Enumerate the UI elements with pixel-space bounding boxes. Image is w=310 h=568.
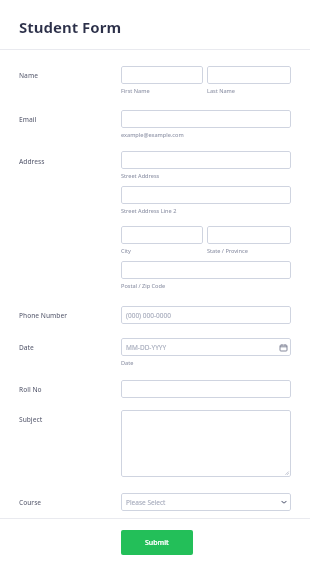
staticText: Street Address Line 2 xyxy=(121,207,177,215)
button[interactable]: City xyxy=(121,226,203,244)
button[interactable]: Email xyxy=(121,110,291,128)
staticText: Postal / Zip Code xyxy=(121,282,166,290)
staticText: Phone Number xyxy=(19,311,67,320)
staticText: Student Form xyxy=(19,17,122,37)
button[interactable]: State / Province xyxy=(207,226,291,244)
staticText: Date xyxy=(19,343,34,352)
staticText: Course xyxy=(19,498,42,507)
staticText: Last Name xyxy=(207,87,235,95)
button[interactable]: Last Name xyxy=(207,66,291,84)
button[interactable]: First Name xyxy=(121,66,203,84)
button[interactable]: Phone Number xyxy=(121,306,291,324)
staticText: City xyxy=(121,247,131,255)
button[interactable]: Postal / Zip Code xyxy=(121,261,291,279)
staticText: First Name xyxy=(121,87,150,95)
staticText: Address xyxy=(19,157,45,166)
staticText: Roll No xyxy=(19,385,42,394)
button[interactable]: Submit xyxy=(121,530,193,555)
button[interactable]: Date xyxy=(121,338,291,356)
staticText: Street Address xyxy=(121,172,160,180)
staticText: Date xyxy=(121,359,134,367)
staticText: Email xyxy=(19,115,37,124)
button[interactable]: Course dropdown xyxy=(121,493,291,511)
staticText: Subject xyxy=(19,415,43,424)
staticText: (000) 000-0000 xyxy=(126,311,171,320)
button[interactable]: Street Address Line 2 xyxy=(121,186,291,204)
staticText: State / Province xyxy=(207,247,248,255)
staticText: example@example.com xyxy=(121,131,184,139)
staticText: MM-DD-YYYY xyxy=(126,343,167,352)
staticText: Name xyxy=(19,71,38,80)
staticText: Submit xyxy=(145,538,169,548)
button[interactable]: Roll No xyxy=(121,380,291,398)
button[interactable]: Street Address xyxy=(121,151,291,169)
staticText: Please Select xyxy=(126,498,166,507)
button[interactable]: Subject xyxy=(121,410,291,477)
